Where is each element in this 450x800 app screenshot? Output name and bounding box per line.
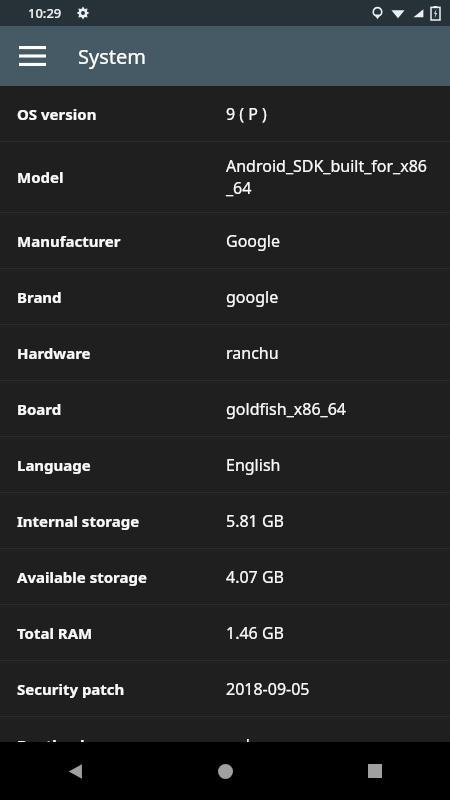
button[interactable]: OS version [0, 86, 450, 142]
staticText: OS version [17, 104, 226, 124]
staticText: System [78, 43, 146, 70]
staticText: 4.07 GB [226, 566, 433, 588]
button[interactable]: Manufacturer [0, 213, 450, 269]
staticText: 2018-09-05 [226, 678, 433, 700]
staticText: Manufacturer [17, 231, 226, 251]
staticText: 5.81 GB [226, 510, 433, 532]
staticText: ranchu [226, 342, 433, 364]
staticText: Board [17, 399, 226, 419]
staticText: Model [17, 167, 226, 187]
staticText: Internal storage [17, 511, 226, 531]
button[interactable]: Internal storage [0, 493, 450, 549]
button[interactable]: Open navigation menu [8, 32, 56, 80]
button[interactable]: Board [0, 381, 450, 437]
staticText: Brand [17, 287, 226, 307]
staticText: Bootloader [17, 735, 226, 742]
staticText: English [226, 454, 433, 476]
staticText: unknown [226, 734, 433, 742]
button[interactable]: Language [0, 437, 450, 493]
button[interactable]: Home [150, 742, 300, 800]
staticText: 1.46 GB [226, 622, 433, 644]
staticText: Language [17, 455, 226, 475]
staticText: Total RAM [17, 623, 226, 643]
button[interactable]: Security patch [0, 661, 450, 717]
button[interactable]: Bootloader [0, 717, 450, 742]
button[interactable]: Brand [0, 269, 450, 325]
staticText: google [226, 286, 433, 308]
staticText: Security patch [17, 679, 226, 699]
staticText: 9 ( P ) [226, 103, 433, 125]
button[interactable]: Model [0, 142, 450, 213]
button[interactable]: Back [0, 742, 150, 800]
staticText: Google [226, 230, 433, 252]
button[interactable]: Recent apps [300, 742, 450, 800]
staticText: goldfish_x86_64 [226, 398, 433, 420]
staticText: 10:29 [28, 4, 62, 22]
staticText: Android_SDK_built_for_x86_64 [226, 155, 433, 199]
button[interactable]: Available storage [0, 549, 450, 605]
button[interactable]: Hardware [0, 325, 450, 381]
staticText: Hardware [17, 343, 226, 363]
button[interactable]: Total RAM [0, 605, 450, 661]
staticText: Available storage [17, 567, 226, 587]
